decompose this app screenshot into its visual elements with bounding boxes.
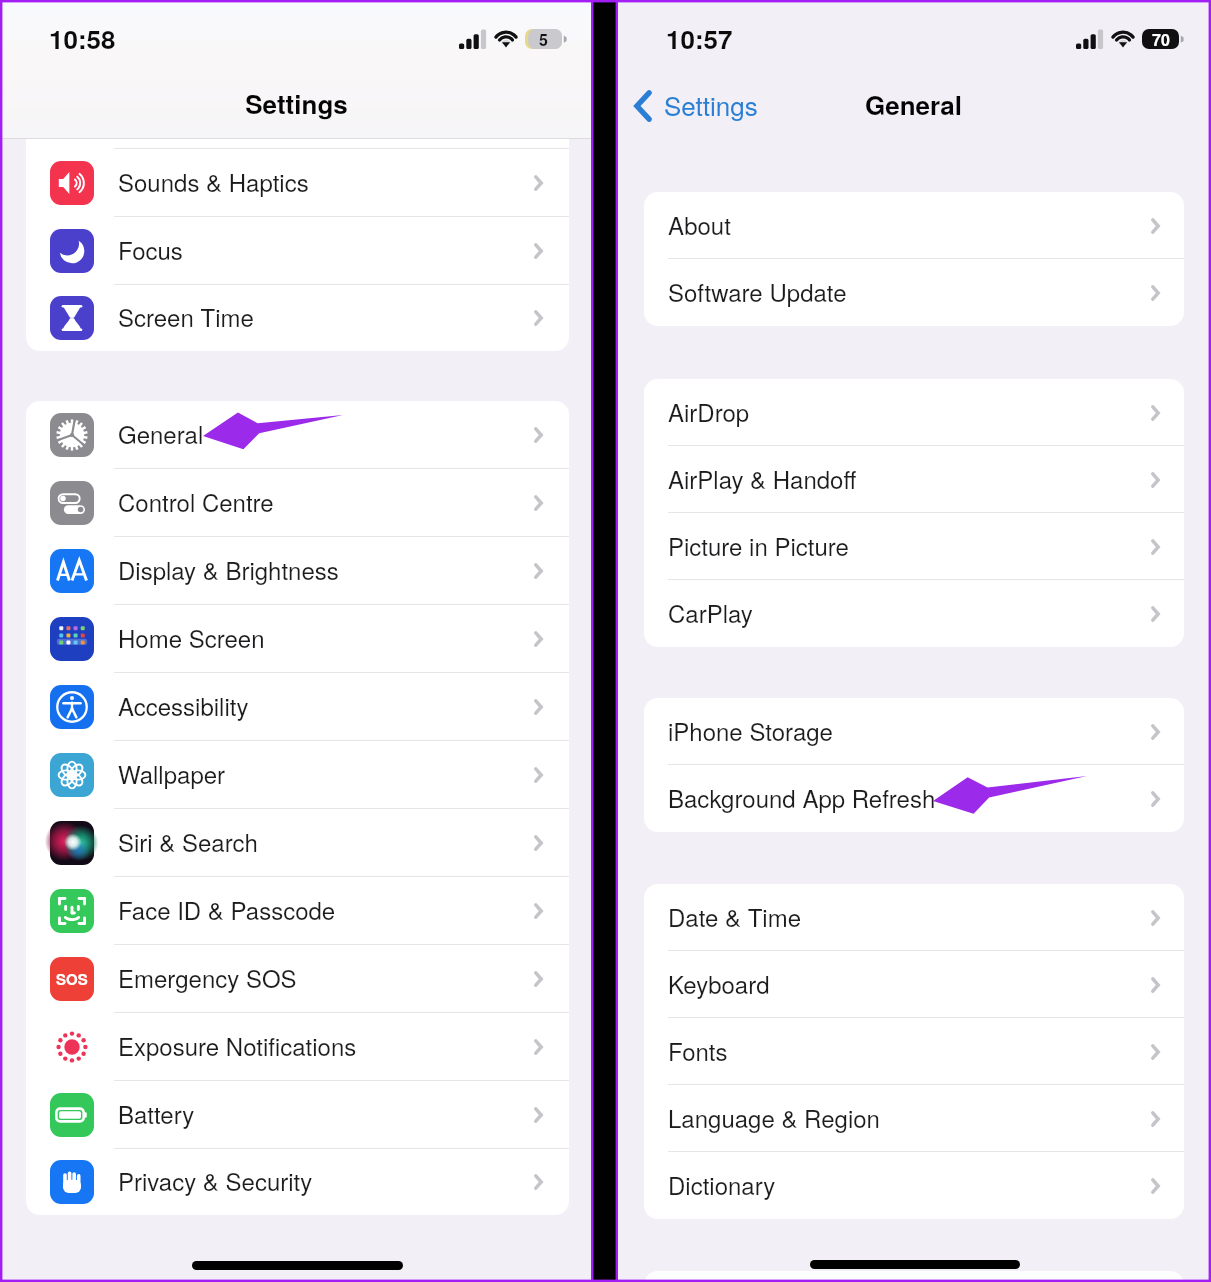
button[interactable]: Fonts xyxy=(644,1018,1184,1085)
staticText: General xyxy=(618,86,1209,123)
staticText: SOS xyxy=(56,968,88,989)
button[interactable]: Background App Refresh xyxy=(644,765,1184,832)
staticText: Privacy & Security xyxy=(118,1163,313,1197)
button[interactable]: CarPlay xyxy=(644,580,1184,647)
staticText: Background App Refresh xyxy=(668,780,936,814)
staticText: Settings xyxy=(1,85,592,122)
button[interactable]: SOS xyxy=(26,945,569,1013)
button[interactable]: Keyboard xyxy=(644,951,1184,1018)
button[interactable]: Exposure Notifications xyxy=(26,1013,569,1081)
staticText: Display & Brightness xyxy=(118,552,339,586)
button[interactable]: Date & Time xyxy=(644,884,1184,951)
button[interactable]: Back xyxy=(635,86,758,126)
button[interactable]: Dictionary xyxy=(644,1152,1184,1219)
button[interactable]: Control Centre xyxy=(26,469,569,537)
staticText: Exposure Notifications xyxy=(118,1028,357,1062)
button[interactable]: Battery xyxy=(26,1081,569,1149)
staticText: About xyxy=(668,207,731,241)
staticText: 10:57 xyxy=(666,20,733,57)
button[interactable]: Screen Time xyxy=(26,285,569,351)
staticText: CarPlay xyxy=(668,595,753,629)
staticText: Sounds & Haptics xyxy=(118,164,309,198)
staticText: Face ID & Passcode xyxy=(118,892,336,926)
staticText: Fonts xyxy=(668,1033,728,1067)
staticText: Dictionary xyxy=(668,1167,776,1201)
button[interactable]: Software Update xyxy=(644,259,1184,326)
staticText: Software Update xyxy=(668,274,847,308)
button[interactable]: Home Screen xyxy=(26,605,569,673)
button[interactable]: Display & Brightness xyxy=(26,537,569,605)
button[interactable]: General xyxy=(26,401,569,469)
button[interactable]: iPhone Storage xyxy=(644,698,1184,765)
staticText: Home Screen xyxy=(118,620,265,654)
button[interactable]: Focus xyxy=(26,217,569,285)
staticText: Focus xyxy=(118,232,183,266)
staticText: Picture in Picture xyxy=(668,528,849,562)
staticText: 10:58 xyxy=(49,20,116,57)
staticText: Emergency SOS xyxy=(118,960,297,994)
staticText: AirDrop xyxy=(668,394,750,428)
button[interactable]: Wallpaper xyxy=(26,741,569,809)
staticText: AirPlay & Handoff xyxy=(668,461,857,495)
button[interactable]: Picture in Picture xyxy=(644,513,1184,580)
other: Back xyxy=(635,91,651,121)
button[interactable]: Siri & Search xyxy=(26,809,569,877)
button[interactable]: Accessibility xyxy=(26,673,569,741)
staticText: Accessibility xyxy=(118,688,249,722)
button[interactable]: AirDrop xyxy=(644,379,1184,446)
staticText: 70 xyxy=(1152,28,1170,48)
staticText: Settings xyxy=(664,86,758,123)
staticText: Date & Time xyxy=(668,899,802,933)
staticText: Keyboard xyxy=(668,966,770,1000)
button[interactable]: About xyxy=(644,192,1184,259)
staticText: Control Centre xyxy=(118,484,274,518)
staticText: Language & Region xyxy=(668,1100,880,1134)
button[interactable]: Language & Region xyxy=(644,1085,1184,1152)
staticText: iPhone Storage xyxy=(668,713,833,747)
staticText: General xyxy=(118,416,204,450)
button[interactable]: Face ID & Passcode xyxy=(26,877,569,945)
staticText: Wallpaper xyxy=(118,756,226,790)
staticText: Siri & Search xyxy=(118,824,258,858)
staticText: Battery xyxy=(118,1096,195,1130)
button[interactable]: Privacy & Security xyxy=(26,1149,569,1215)
button[interactable]: AirPlay & Handoff xyxy=(644,446,1184,513)
staticText: Screen Time xyxy=(118,299,254,333)
staticText: 5 xyxy=(539,28,548,48)
button[interactable]: Sounds & Haptics xyxy=(26,149,569,217)
